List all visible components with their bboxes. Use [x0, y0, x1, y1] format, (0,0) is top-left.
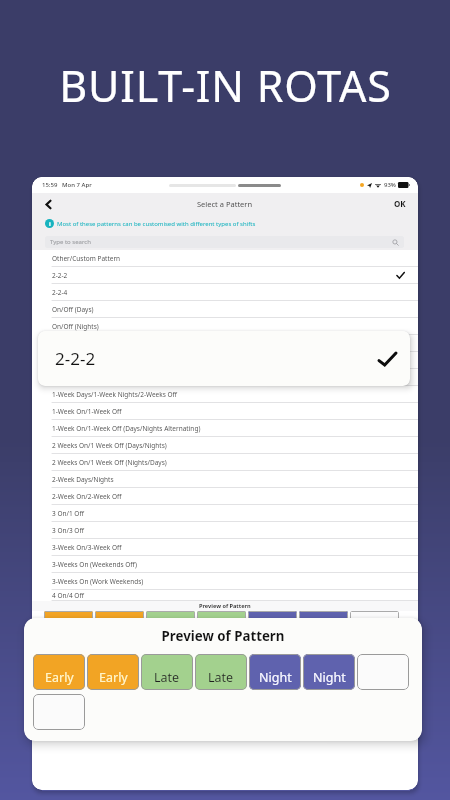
button[interactable]: 2-2-2 [32, 267, 418, 284]
staticText: 93% [384, 181, 396, 189]
button[interactable]: 2 Weeks On/1 Week Off (Nights/Days) [32, 454, 418, 471]
staticText: BUILT-IN ROTAS [59, 56, 392, 115]
staticText: Preview of Pattern [199, 602, 251, 610]
button[interactable]: Early [87, 654, 139, 690]
staticText: 2 Weeks On/1 Week Off (Nights/Days) [52, 458, 167, 467]
button[interactable]: Back [38, 194, 58, 214]
staticText: 2 Weeks On/1 Week Off (Days/Nights) [52, 441, 167, 450]
staticText: 2-2-2 [55, 347, 96, 370]
button[interactable]: 2-Week On/2-Week Off [32, 488, 418, 505]
staticText: Late [154, 669, 180, 686]
staticText: 3-Weeks On (Work Weekends) [52, 577, 144, 586]
staticText: 4 On/4 Off [52, 591, 84, 600]
button[interactable]: 3 On/3 Off [32, 522, 418, 539]
staticText: 1-Week On/1-Week Off [52, 407, 122, 416]
button[interactable] [33, 694, 85, 730]
button[interactable]: Late [195, 654, 247, 690]
staticText: 3 On/1 Off [52, 509, 84, 518]
staticText: Type to search [50, 238, 91, 246]
staticText: 2-2-2 [52, 271, 68, 280]
staticText: OK [394, 198, 406, 209]
staticText: Night [259, 669, 292, 686]
button[interactable] [357, 654, 409, 690]
button[interactable]: 1-Week Days [32, 352, 418, 369]
staticText: 1-Week On/1-Week Off (Days/Nights Altern… [52, 424, 201, 433]
staticText: 15:59 Mon 7 Apr [42, 181, 92, 189]
staticText: Other/Custom Pattern [52, 254, 121, 263]
staticText: 2-Week On/2-Week Off [52, 492, 122, 501]
button[interactable]: OK [390, 195, 410, 212]
button[interactable]: 1-Week Days/1-Week Nights/2-Weeks Off [32, 386, 418, 403]
staticText: Preview of Pattern [24, 627, 422, 645]
staticText: Most of these patterns can be customised… [57, 220, 256, 228]
staticText: 2-Week Days/Nights [52, 475, 114, 484]
button[interactable]: 4 On/4 Off [32, 590, 418, 601]
button[interactable]: Early [33, 654, 85, 690]
button[interactable]: Late [141, 654, 193, 690]
button[interactable]: 2-2-2 [38, 331, 410, 386]
button[interactable]: On/Off (Nights) [32, 318, 418, 335]
staticText: Night [313, 669, 346, 686]
button[interactable]: On/Off (Days) [32, 301, 418, 318]
staticText: 2-2-4 [52, 288, 68, 297]
staticText: On/Off (Nights) [52, 322, 99, 331]
staticText: 3 On/3 Off [52, 526, 84, 535]
button[interactable]: 3 On/1 Off [32, 505, 418, 522]
staticText: Late [208, 669, 234, 686]
button[interactable]: 1-Week On/1-Week Off [32, 403, 418, 420]
button[interactable]: Night [303, 654, 355, 690]
staticText: i [49, 220, 51, 228]
button[interactable]: 2-Week Days/Nights [32, 471, 418, 488]
button[interactable]: 3-Weeks On (Work Weekends) [32, 573, 418, 590]
button[interactable]: Type to search [45, 236, 404, 248]
staticText: Select a Pattern [197, 199, 253, 209]
button[interactable]: 1-Week Nights [32, 369, 418, 386]
staticText: On/Off (Days) [52, 305, 94, 314]
button[interactable]: Night [249, 654, 301, 690]
staticText: 3-Weeks On (Weekends Off) [52, 560, 138, 569]
button[interactable]: 2-2-4 [32, 284, 418, 301]
staticText: 1-Week Days [52, 356, 92, 365]
button[interactable]: Other/Custom Pattern [32, 250, 418, 267]
button[interactable]: 2 Weeks On/1 Week Off (Days/Nights) [32, 437, 418, 454]
staticText: Early [45, 669, 74, 686]
staticText: Early [99, 669, 128, 686]
button[interactable]: 3-Week On/3-Week Off [32, 539, 418, 556]
button[interactable]: 1-Week On/1-Week Off (Days/Nights Altern… [32, 420, 418, 437]
button[interactable]: On/Off (Days/Nights) [32, 335, 418, 352]
staticText: 3-Week On/3-Week Off [52, 543, 122, 552]
staticText: 1-Week Days/1-Week Nights/2-Weeks Off [52, 390, 178, 399]
button[interactable]: 3-Weeks On (Weekends Off) [32, 556, 418, 573]
